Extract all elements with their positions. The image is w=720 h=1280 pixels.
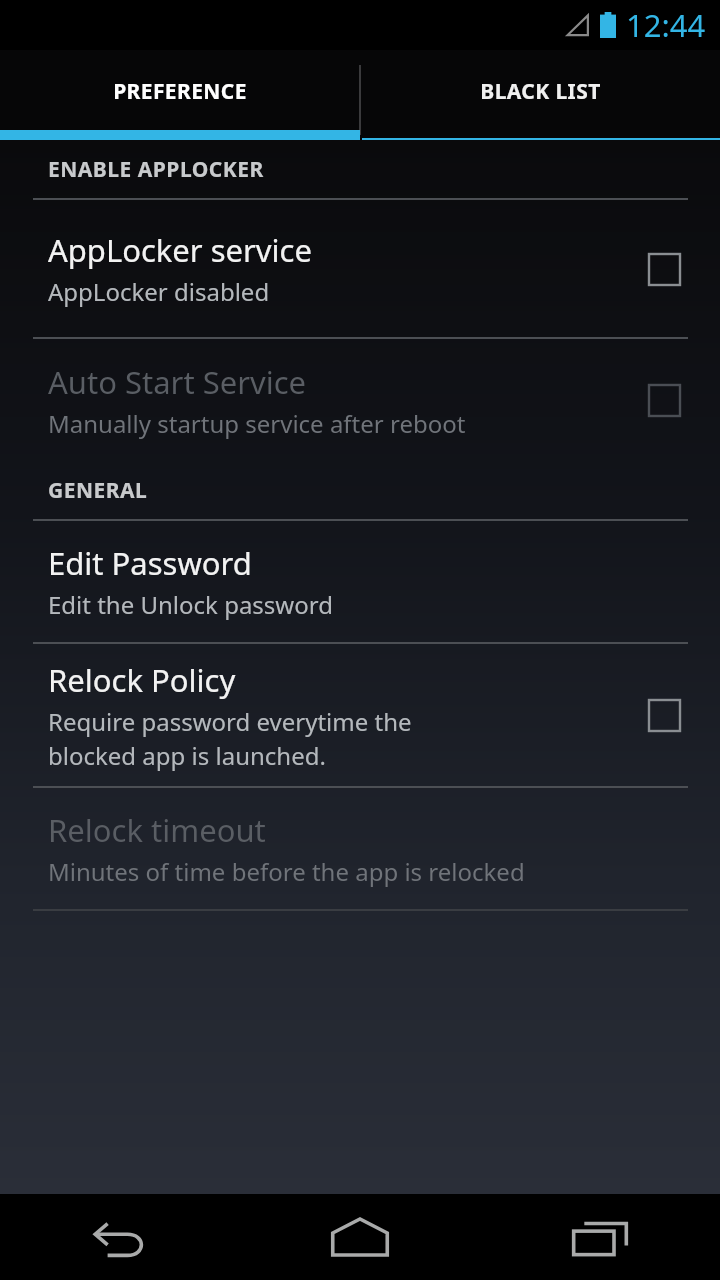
button[interactable]: AppLocker service: [0, 200, 720, 337]
button[interactable]: BLACK LIST: [360, 50, 720, 140]
staticText: Relock timeout: [48, 809, 266, 851]
button[interactable]: Recent apps: [480, 1194, 720, 1280]
button[interactable]: Edit Password: [0, 521, 720, 642]
staticText: Edit Password: [48, 542, 252, 584]
button[interactable]: Auto Start Service: [0, 339, 720, 461]
staticText: 12:44: [626, 4, 706, 46]
staticText: AppLocker disabled: [48, 275, 270, 308]
staticText: Auto Start Service: [48, 361, 307, 403]
button[interactable]: Relock Policy: [0, 644, 720, 786]
staticText: BLACK LIST: [480, 77, 601, 106]
button[interactable]: Relock timeout: [0, 788, 720, 909]
staticText: AppLocker service: [48, 229, 312, 271]
button[interactable]: AppLocker service: [640, 245, 688, 293]
button[interactable]: Back: [0, 1194, 240, 1280]
button[interactable]: Auto Start Service: [640, 376, 688, 424]
staticText: Manually startup service after reboot: [48, 407, 466, 440]
staticText: Edit the Unlock password: [48, 588, 333, 621]
staticText: ENABLE APPLOCKER: [48, 155, 264, 184]
button[interactable]: Home: [240, 1194, 480, 1280]
staticText: Require password everytime the blocked a…: [48, 705, 412, 772]
staticText: Minutes of time before the app is relock…: [48, 855, 525, 888]
staticText: GENERAL: [48, 476, 148, 505]
staticText: PREFERENCE: [113, 77, 247, 106]
button[interactable]: Relock Policy: [640, 691, 688, 739]
button[interactable]: PREFERENCE: [0, 50, 360, 140]
staticText: Relock Policy: [48, 659, 236, 701]
